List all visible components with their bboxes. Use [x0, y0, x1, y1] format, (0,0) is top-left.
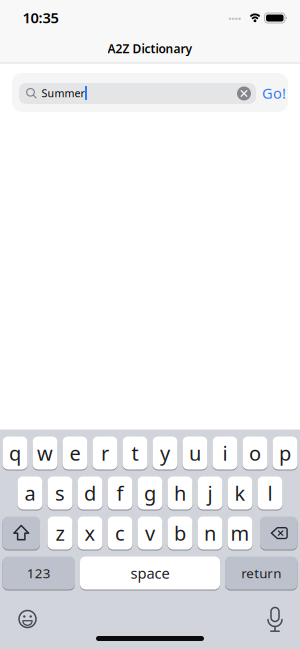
button[interactable]: return: [225, 556, 297, 589]
staticText: x: [84, 520, 95, 546]
staticText: t: [131, 440, 138, 466]
button[interactable]: b: [167, 516, 192, 549]
button[interactable]: p: [272, 436, 297, 469]
button[interactable]: k: [227, 476, 252, 509]
button[interactable]: y: [152, 436, 177, 469]
staticText: 123: [27, 564, 51, 582]
staticText: n: [204, 520, 216, 546]
staticText: f: [116, 480, 123, 506]
staticText: y: [160, 440, 170, 466]
staticText: u: [189, 440, 201, 466]
button[interactable]: Clear text: [234, 83, 254, 103]
staticText: z: [55, 520, 64, 546]
staticText: space: [130, 563, 169, 583]
staticText: v: [145, 520, 155, 546]
button[interactable]: s: [47, 476, 72, 509]
button[interactable]: d: [77, 476, 102, 509]
staticText: k: [234, 480, 245, 506]
button[interactable]: Numbers: [2, 556, 75, 589]
staticText: m: [230, 520, 249, 546]
staticText: p: [279, 440, 291, 466]
button[interactable]: Dictate: [263, 604, 287, 634]
button[interactable]: u: [182, 436, 207, 469]
staticText: o: [249, 440, 261, 466]
button[interactable]: Search: [19, 83, 256, 104]
staticText: c: [115, 520, 125, 546]
staticText: h: [174, 480, 186, 506]
staticText: j: [207, 480, 212, 506]
button[interactable]: h: [167, 476, 192, 509]
staticText: a: [24, 480, 35, 506]
button[interactable]: m: [227, 516, 252, 549]
button[interactable]: e: [62, 436, 87, 469]
staticText: r: [101, 440, 109, 466]
staticText: Summer: [41, 86, 84, 100]
button[interactable]: z: [47, 516, 72, 549]
staticText: 10:35: [22, 8, 58, 27]
staticText: b: [174, 520, 186, 546]
staticText: g: [144, 480, 156, 506]
button[interactable]: f: [107, 476, 132, 509]
button[interactable]: a: [17, 476, 42, 509]
button[interactable]: g: [137, 476, 162, 509]
button[interactable]: o: [242, 436, 267, 469]
staticText: e: [69, 440, 80, 466]
button[interactable]: l: [257, 476, 282, 509]
button[interactable]: t: [122, 436, 147, 469]
button[interactable]: w: [32, 436, 57, 469]
staticText: d: [84, 480, 96, 506]
staticText: i: [222, 440, 227, 466]
button[interactable]: v: [137, 516, 162, 549]
staticText: q: [9, 440, 21, 466]
button[interactable]: q: [2, 436, 27, 469]
staticText: w: [37, 440, 53, 466]
staticText: return: [241, 564, 281, 582]
staticText: l: [267, 480, 272, 506]
button[interactable]: x: [77, 516, 102, 549]
button[interactable]: Shift: [2, 516, 40, 549]
button[interactable]: Delete: [260, 516, 297, 549]
button[interactable]: j: [197, 476, 222, 509]
button[interactable]: i: [212, 436, 237, 469]
staticText: Go!: [262, 83, 286, 103]
staticText: s: [55, 480, 65, 506]
button[interactable]: c: [107, 516, 132, 549]
button[interactable]: space: [80, 556, 220, 589]
button[interactable]: Emoji: [15, 607, 39, 631]
button[interactable]: r: [92, 436, 117, 469]
staticText: A2Z Dictionary: [107, 40, 192, 56]
button[interactable]: Go!: [254, 78, 294, 108]
button[interactable]: n: [197, 516, 222, 549]
